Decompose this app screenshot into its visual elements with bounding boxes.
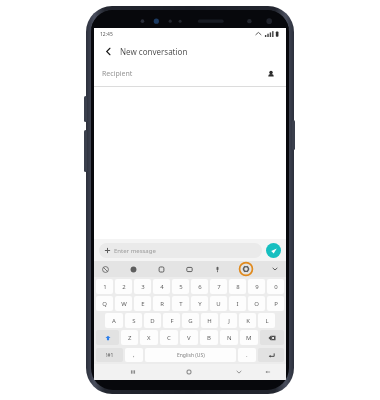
staticText: 0 xyxy=(274,283,278,291)
staticText: !#1 xyxy=(106,352,114,359)
staticText: L xyxy=(265,317,269,325)
button[interactable]: S xyxy=(125,313,142,328)
button[interactable]: H xyxy=(201,313,218,328)
button[interactable]: Backspace xyxy=(260,330,284,345)
button[interactable]: 5 xyxy=(172,279,189,294)
staticText: Recipient xyxy=(102,69,133,79)
button[interactable]: 9 xyxy=(248,279,265,294)
staticText: R xyxy=(160,300,164,308)
button[interactable]: 1 xyxy=(96,279,113,294)
staticText: M xyxy=(246,334,252,342)
staticText: Enter message xyxy=(114,247,156,255)
button[interactable]: Keyboard settings xyxy=(239,262,253,276)
button[interactable]: Recents xyxy=(126,365,140,379)
button[interactable]: 3 xyxy=(134,279,151,294)
button[interactable]: 2 xyxy=(115,279,132,294)
staticText: O xyxy=(254,300,259,308)
staticText: G xyxy=(188,317,193,325)
button[interactable]: More xyxy=(269,263,281,275)
button[interactable]: Hide keyboard xyxy=(232,365,246,379)
button[interactable]: J xyxy=(220,313,237,328)
staticText: 5 xyxy=(179,283,183,291)
staticText: 7 xyxy=(217,283,221,291)
staticText: Q xyxy=(102,300,107,308)
button[interactable]: Recipient xyxy=(94,62,286,86)
button[interactable]: M xyxy=(240,330,258,345)
button[interactable]: 6 xyxy=(191,279,208,294)
button[interactable]: W xyxy=(115,296,132,311)
button[interactable]: Pick contact xyxy=(264,67,278,81)
button[interactable]: 8 xyxy=(229,279,246,294)
button[interactable]: Z xyxy=(121,330,138,345)
button[interactable]: T xyxy=(172,296,189,311)
button[interactable]: English (US) xyxy=(145,348,236,362)
button[interactable]: B xyxy=(200,330,218,345)
button[interactable]: Microphone xyxy=(211,263,223,275)
button[interactable]: !#1 xyxy=(96,348,123,362)
button[interactable]: Q xyxy=(96,296,113,311)
button[interactable]: 4 xyxy=(153,279,170,294)
staticText: 2 xyxy=(122,283,126,291)
button[interactable]: Send xyxy=(266,243,281,258)
staticText: . xyxy=(246,351,248,359)
button[interactable]: GIF xyxy=(183,263,195,275)
staticText: E xyxy=(141,300,145,308)
staticText: P xyxy=(274,300,278,308)
staticText: A xyxy=(112,317,116,325)
button[interactable]: Enter xyxy=(258,348,284,362)
staticText: B xyxy=(207,334,211,342)
button[interactable]: O xyxy=(248,296,265,311)
button[interactable]: R xyxy=(153,296,170,311)
button[interactable]: I xyxy=(229,296,246,311)
staticText: 3 xyxy=(141,283,145,291)
button[interactable]: Emoji xyxy=(127,263,139,275)
button[interactable]: 7 xyxy=(210,279,227,294)
staticText: W xyxy=(121,300,127,308)
staticText: English (US) xyxy=(177,352,205,359)
button[interactable]: N xyxy=(220,330,238,345)
button[interactable]: Y xyxy=(191,296,208,311)
staticText: X xyxy=(147,334,151,342)
staticText: K xyxy=(246,317,250,325)
button[interactable]: Back xyxy=(94,40,286,62)
button[interactable]: K xyxy=(239,313,256,328)
staticText: New conversation xyxy=(120,46,188,57)
button[interactable]: , xyxy=(125,348,143,362)
button[interactable]: G xyxy=(182,313,199,328)
button[interactable]: P xyxy=(267,296,284,311)
button[interactable]: U xyxy=(210,296,227,311)
button[interactable]: 0 xyxy=(267,279,284,294)
button[interactable]: Home xyxy=(182,365,196,379)
staticText: H xyxy=(207,317,212,325)
button[interactable]: Stickers xyxy=(155,263,167,275)
staticText: J xyxy=(228,317,230,325)
staticText: 4 xyxy=(160,283,164,291)
button[interactable]: . xyxy=(238,348,256,362)
staticText: 8 xyxy=(236,283,240,291)
button[interactable]: Enter message xyxy=(99,243,262,258)
button[interactable]: Back xyxy=(100,43,116,59)
staticText: 12:45 xyxy=(100,31,113,38)
button[interactable]: Back xyxy=(261,365,275,379)
staticText: 1 xyxy=(103,283,107,291)
staticText: F xyxy=(170,317,174,325)
button[interactable]: D xyxy=(144,313,161,328)
staticText: Z xyxy=(128,334,132,342)
button[interactable]: A xyxy=(105,313,123,328)
staticText: Y xyxy=(198,300,202,308)
staticText: 9 xyxy=(255,283,259,291)
button[interactable]: Shift xyxy=(96,330,119,345)
button[interactable]: V xyxy=(180,330,198,345)
staticText: , xyxy=(133,351,135,359)
staticText: 6 xyxy=(198,283,202,291)
staticText: I xyxy=(236,300,239,308)
staticText: D xyxy=(150,317,155,325)
button[interactable]: F xyxy=(163,313,180,328)
button[interactable]: X xyxy=(140,330,158,345)
staticText: V xyxy=(187,334,191,342)
button[interactable]: E xyxy=(134,296,151,311)
button[interactable]: Voice typing xyxy=(99,263,111,275)
button[interactable]: L xyxy=(258,313,275,328)
button[interactable]: C xyxy=(160,330,178,345)
staticText: C xyxy=(167,334,171,342)
